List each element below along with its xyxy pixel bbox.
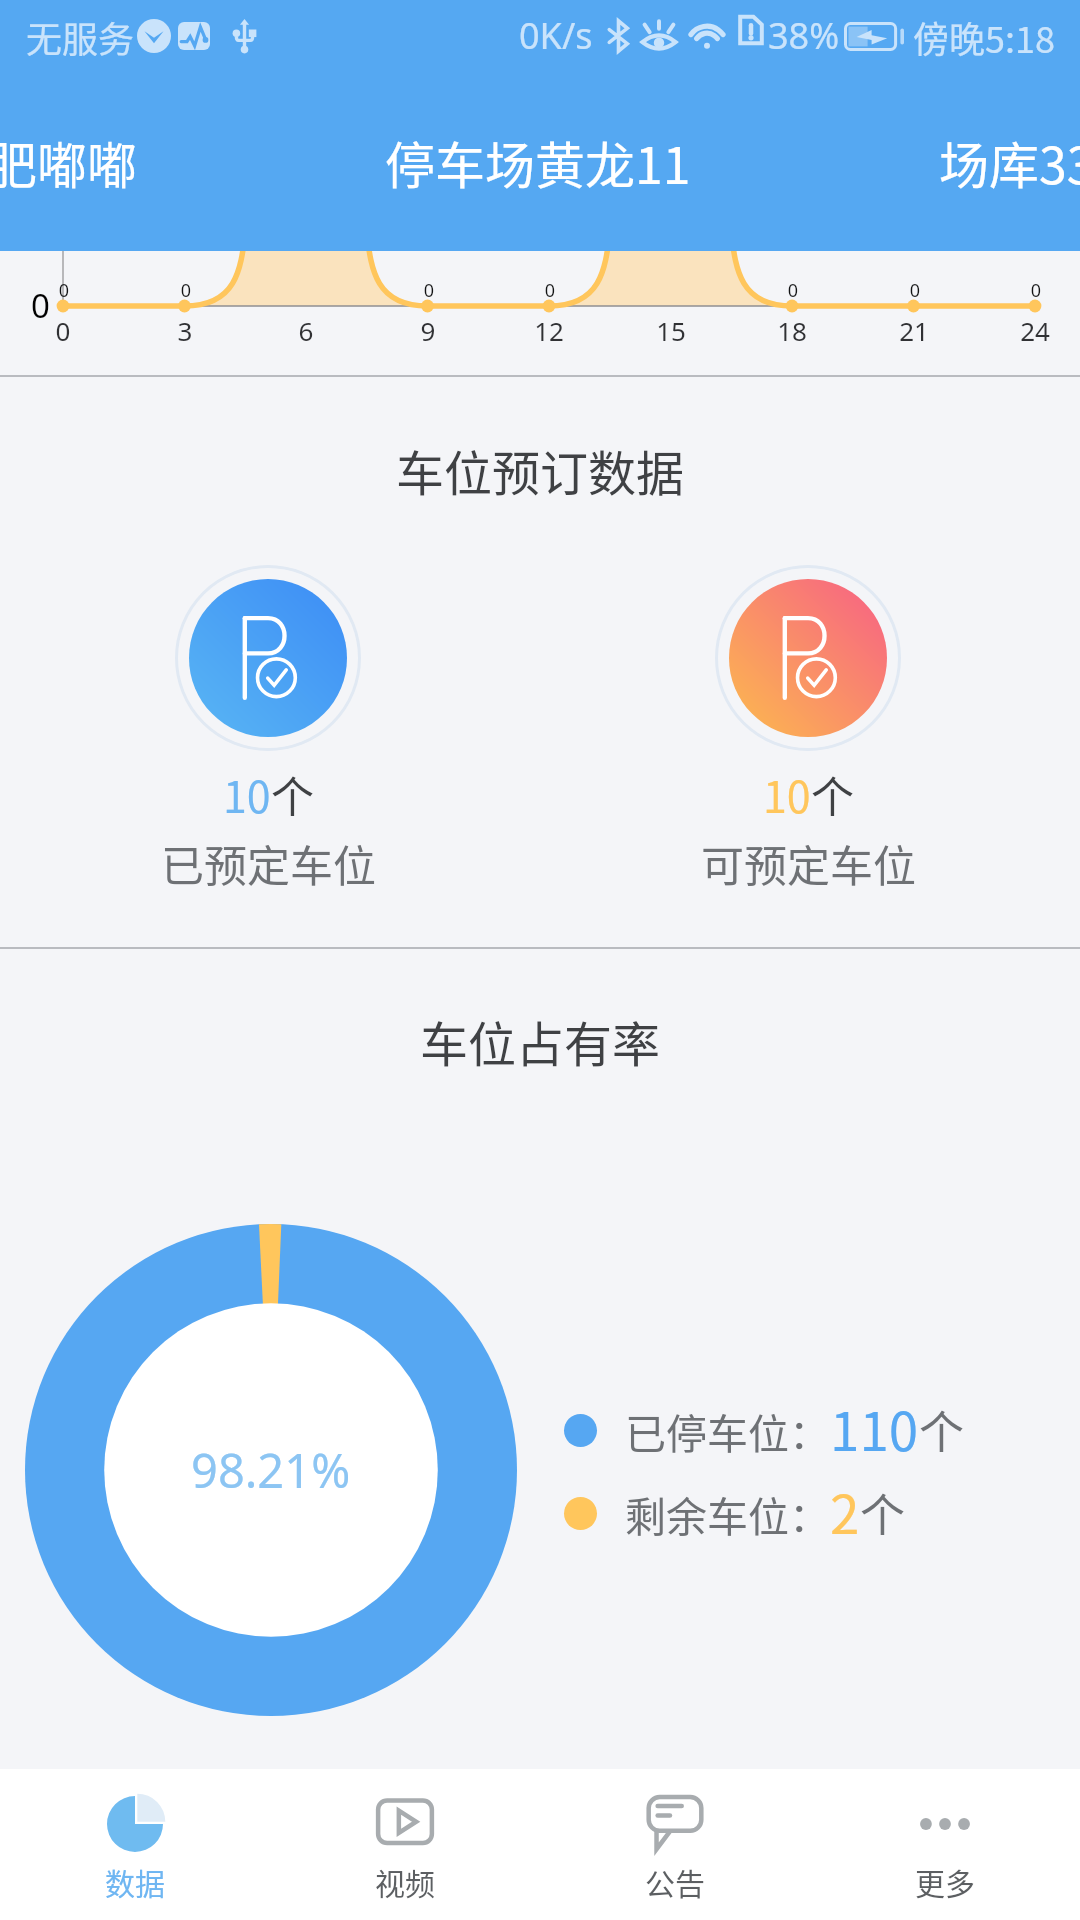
staticText: 肥嘟嘟 <box>0 126 137 198</box>
staticText: 0 <box>510 278 590 303</box>
staticText: 0 <box>23 313 103 348</box>
staticText: 0 <box>996 278 1076 303</box>
staticText: 18 <box>752 313 832 348</box>
staticText: 3 <box>145 313 225 348</box>
staticText: 15 <box>631 313 711 348</box>
button[interactable]: Video <box>270 1769 540 1920</box>
staticText: 个 <box>271 763 314 825</box>
staticText: 0 <box>24 278 104 303</box>
staticText: 车位预订数据 <box>396 435 685 505</box>
staticText: 停车场黄龙11 <box>385 126 691 198</box>
staticText: 0 <box>875 278 955 303</box>
staticText: 12 <box>509 313 589 348</box>
staticText: 公告 <box>645 1860 705 1903</box>
staticText: 98.21% <box>191 1438 351 1502</box>
staticText: 0 <box>389 278 469 303</box>
staticText: 0 <box>753 278 833 303</box>
staticText: 110 <box>830 1390 919 1460</box>
staticText: 个 <box>811 763 854 825</box>
staticText: 10 <box>763 763 811 825</box>
staticText: 已预定车位 <box>161 832 376 894</box>
button[interactable]: 10 <box>133 541 403 921</box>
staticText: 场库33 <box>939 126 1080 198</box>
staticText: 可预定车位 <box>701 832 916 894</box>
staticText: 6 <box>266 313 346 348</box>
button[interactable]: Data <box>0 1769 270 1920</box>
button[interactable]: More <box>810 1769 1080 1920</box>
staticText: 视频 <box>375 1860 435 1903</box>
staticText: 10 <box>223 763 271 825</box>
staticText: 剩余车位： <box>625 1484 830 1543</box>
staticText: 9 <box>388 313 468 348</box>
staticText: 个 <box>860 1480 906 1545</box>
staticText: 数据 <box>105 1860 165 1903</box>
staticText: 0 <box>146 278 226 303</box>
staticText: 已停车位： <box>625 1401 830 1460</box>
staticText: 0K/s <box>519 11 593 60</box>
staticText: 2 <box>830 1473 860 1543</box>
staticText: 个 <box>919 1397 965 1462</box>
staticText: 24 <box>995 313 1075 348</box>
staticText: 傍晚5:18 <box>913 11 1055 63</box>
staticText: 38% <box>768 11 840 60</box>
staticText: 0 <box>31 283 50 328</box>
staticText: 21 <box>874 313 954 348</box>
staticText: 车位占有率 <box>420 1006 661 1076</box>
button[interactable]: Announcements <box>540 1769 810 1920</box>
staticText: 更多 <box>915 1860 975 1903</box>
button[interactable]: 10 <box>673 541 943 921</box>
staticText: 无服务 <box>26 11 135 63</box>
